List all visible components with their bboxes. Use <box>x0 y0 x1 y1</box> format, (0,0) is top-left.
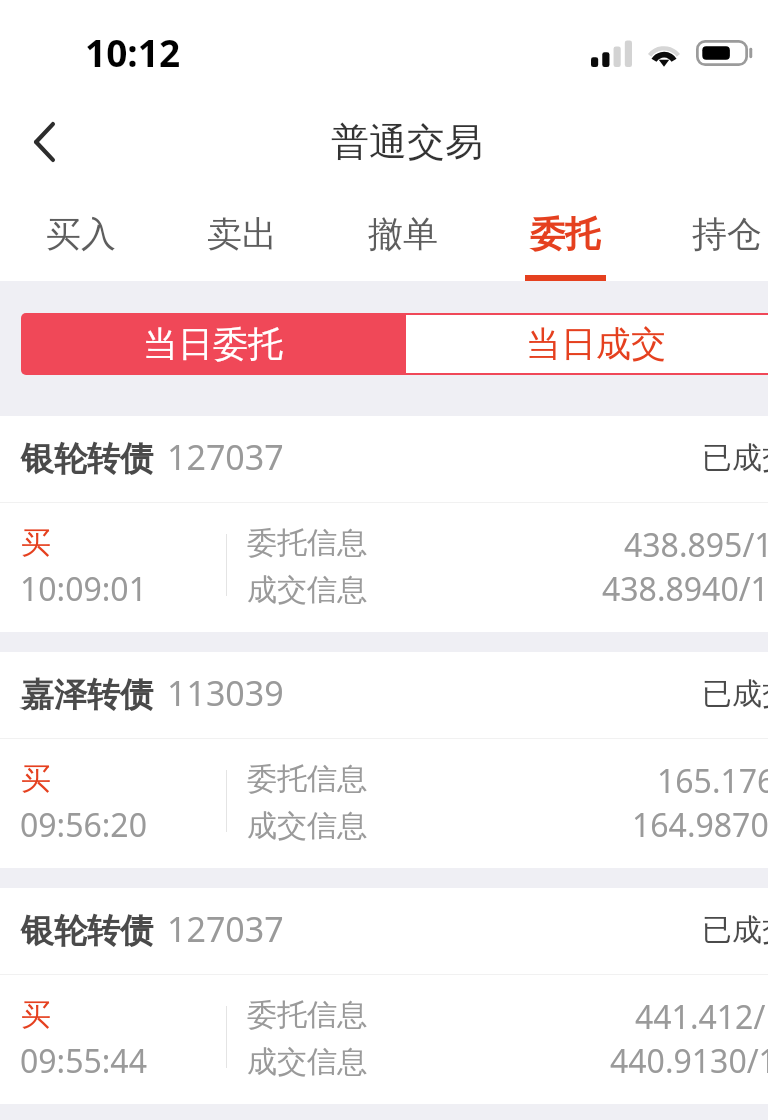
staticText: 买入 <box>46 212 116 256</box>
button[interactable]: 买入 <box>0 188 161 281</box>
button[interactable]: 当日成交 <box>404 313 768 375</box>
staticText: 买 <box>21 760 51 798</box>
staticText: 已成交 <box>702 675 768 713</box>
staticText: 127037 <box>167 434 284 480</box>
button[interactable]: 持仓 <box>646 188 768 281</box>
staticText: 09:56:20 <box>20 803 147 847</box>
staticText: 164.9870/100 <box>632 803 768 847</box>
staticText: 165.176/100 <box>657 759 768 803</box>
staticText: 委托信息 <box>247 996 367 1034</box>
staticText: 嘉泽转债 <box>21 674 153 716</box>
staticText: 委托 <box>530 212 600 256</box>
staticText: 10:09:01 <box>20 567 147 611</box>
button[interactable]: 银轮转债 <box>0 416 768 632</box>
staticText: 成交信息 <box>247 807 367 845</box>
staticText: 卖出 <box>207 212 277 256</box>
staticText: 委托信息 <box>247 524 367 562</box>
staticText: 当日成交 <box>526 322 666 366</box>
staticText: 09:55:44 <box>20 1039 147 1083</box>
staticText: 普通交易 <box>331 118 483 166</box>
button[interactable]: 卖出 <box>161 188 322 281</box>
staticText: 成交信息 <box>247 1043 367 1081</box>
staticText: 银轮转债 <box>21 910 153 952</box>
staticText: 已成交 <box>702 439 768 477</box>
button[interactable]: 委托 <box>484 188 646 281</box>
staticText: 441.412/100 <box>635 995 768 1039</box>
staticText: 买 <box>21 524 51 562</box>
staticText: 买 <box>21 996 51 1034</box>
staticText: 113039 <box>167 670 284 716</box>
button[interactable]: Back <box>14 95 74 188</box>
staticText: 440.9130/100 <box>610 1039 768 1083</box>
staticText: 438.8940/100 <box>602 567 768 611</box>
staticText: 438.895/100 <box>624 523 768 567</box>
button[interactable]: 撤单 <box>322 188 484 281</box>
staticText: 127037 <box>167 906 284 952</box>
staticText: 撤单 <box>368 212 438 256</box>
staticText: 银轮转债 <box>21 438 153 480</box>
staticText: 已成交 <box>702 911 768 949</box>
button[interactable]: 银轮转债 <box>0 888 768 1104</box>
staticText: 委托信息 <box>247 760 367 798</box>
staticText: 10:12 <box>85 27 181 77</box>
staticText: 成交信息 <box>247 571 367 609</box>
button[interactable]: 当日委托 <box>21 313 404 375</box>
button[interactable]: 嘉泽转债 <box>0 652 768 868</box>
staticText: 当日委托 <box>143 322 283 366</box>
staticText: 持仓 <box>692 212 762 256</box>
